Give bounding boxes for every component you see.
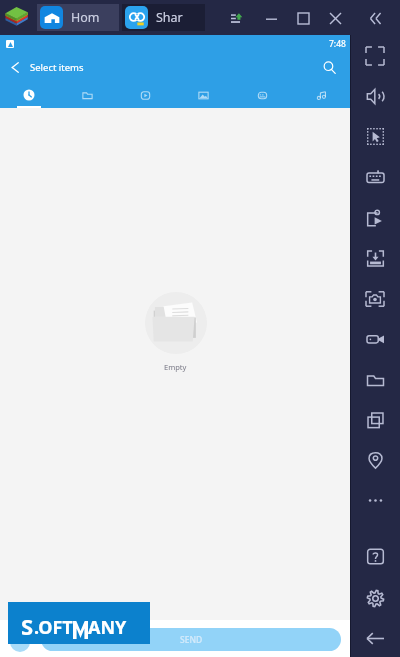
button[interactable]: Files xyxy=(58,80,116,108)
button[interactable]: Music xyxy=(292,80,351,108)
button[interactable]: Media manager xyxy=(361,368,389,392)
staticText: 7:48 xyxy=(329,38,346,50)
button[interactable]: Shar xyxy=(122,4,205,31)
button[interactable]: Recent xyxy=(0,80,58,108)
button[interactable]: Location xyxy=(361,448,389,472)
button[interactable]: Install APK xyxy=(222,4,250,32)
staticText: S xyxy=(21,611,34,641)
button[interactable]: Close xyxy=(321,4,349,32)
button[interactable]: Help xyxy=(361,544,389,568)
button[interactable]: Minimize xyxy=(257,4,285,32)
button[interactable]: Back xyxy=(0,54,30,80)
staticText: .OFT xyxy=(34,615,73,640)
button[interactable]: Settings xyxy=(361,586,389,610)
button[interactable]: Video xyxy=(116,80,174,108)
button[interactable]: Record screen xyxy=(361,327,389,351)
button[interactable]: More xyxy=(361,488,389,512)
button[interactable]: Multi-instance xyxy=(361,408,389,432)
button[interactable]: Apps xyxy=(233,80,292,108)
staticText: Empty xyxy=(164,362,187,372)
staticText: Select items xyxy=(30,61,84,74)
staticText: ANY xyxy=(88,615,127,640)
button[interactable]: Maximize xyxy=(289,4,317,32)
button[interactable]: Hom xyxy=(37,4,119,31)
button[interactable]: Keyboard controls xyxy=(361,165,389,189)
button[interactable]: Back xyxy=(361,626,389,650)
button[interactable]: Macro xyxy=(361,206,389,230)
button[interactable]: Screenshot xyxy=(361,287,389,311)
button[interactable]: Volume xyxy=(361,84,389,108)
button[interactable]: Fullscreen xyxy=(361,44,389,68)
staticText: Hom xyxy=(71,9,100,26)
button[interactable]: Search xyxy=(313,54,345,80)
button[interactable]: Collapse sidebar xyxy=(361,4,389,32)
staticText: Shar xyxy=(156,9,183,26)
staticText: SEND xyxy=(180,634,203,646)
button[interactable]: SEND xyxy=(41,628,341,651)
button[interactable]: Pointer lock xyxy=(361,124,389,148)
button[interactable]: Photos xyxy=(174,80,233,108)
button[interactable]: Install APK xyxy=(361,246,389,270)
